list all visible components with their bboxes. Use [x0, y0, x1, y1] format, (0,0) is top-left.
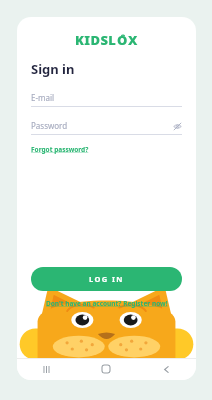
staticText: Password — [31, 120, 172, 131]
staticText: Forgot password? — [31, 145, 89, 154]
staticText: LOG IN — [89, 274, 124, 284]
button[interactable]: Don't have an account? Register now! — [46, 299, 168, 308]
button[interactable]: Back — [136, 358, 196, 380]
button[interactable]: Home — [76, 358, 136, 380]
staticText: Sign in — [31, 60, 75, 78]
button[interactable]: Show password — [172, 121, 182, 131]
staticText: O — [117, 31, 128, 49]
staticText: E-mail — [31, 92, 182, 103]
button[interactable]: LOG IN — [31, 267, 182, 291]
button[interactable]: Recent apps — [17, 358, 76, 380]
staticText: X — [128, 31, 138, 49]
staticText: Don't have an account? Register now! — [46, 299, 168, 308]
button[interactable]: E-mail — [31, 92, 182, 107]
staticText: KIDSL — [75, 31, 117, 49]
button[interactable]: Password — [31, 120, 182, 135]
button[interactable]: Forgot password? — [31, 145, 89, 154]
